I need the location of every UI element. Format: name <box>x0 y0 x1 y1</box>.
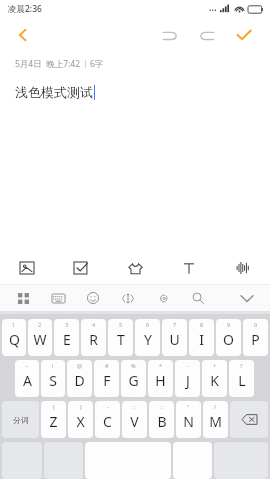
staticText: U <box>169 330 180 349</box>
staticText: D <box>74 371 85 390</box>
button[interactable]: - <box>175 360 200 397</box>
button[interactable]: ) <box>68 401 93 438</box>
staticText: W <box>33 330 47 349</box>
staticText: I <box>199 330 204 349</box>
button[interactable]: Done <box>230 21 258 49</box>
button[interactable]: - <box>95 401 120 438</box>
button[interactable]: Search <box>185 285 211 311</box>
button[interactable]: ? <box>229 360 254 397</box>
button[interactable]: Audio <box>216 252 270 284</box>
button[interactable]: Redo <box>193 21 221 49</box>
staticText: O <box>223 330 234 349</box>
staticText: 6字 <box>90 58 104 70</box>
button[interactable]: Period <box>173 442 212 479</box>
staticText: P <box>251 330 260 349</box>
button[interactable]: % <box>121 360 146 397</box>
button[interactable]: ; <box>149 401 174 438</box>
button[interactable]: Style <box>108 252 162 284</box>
button[interactable]: Image <box>0 252 54 284</box>
button[interactable]: 3 <box>54 319 79 356</box>
staticText: Q <box>9 330 20 349</box>
staticText: 5月4日 晚上7:42 <box>15 58 81 70</box>
button[interactable]: Back <box>10 22 36 48</box>
staticText: 分词 <box>13 415 29 425</box>
staticText: A <box>23 371 32 390</box>
button[interactable]: 1 <box>2 319 26 356</box>
staticText: R <box>89 330 98 349</box>
button[interactable]: ! <box>41 360 65 397</box>
staticText: 1 <box>12 321 16 328</box>
button[interactable]: Undo <box>156 21 184 49</box>
button[interactable]: 分词 <box>2 401 39 438</box>
staticText: E <box>63 330 71 349</box>
button[interactable]: 0 <box>243 319 268 356</box>
button[interactable]: Attach <box>150 285 176 311</box>
staticText: - <box>107 403 109 410</box>
button[interactable]: 9 <box>216 319 241 356</box>
button[interactable]: @ <box>67 360 92 397</box>
staticText: N <box>183 412 194 431</box>
button[interactable]: 6 <box>135 319 160 356</box>
button[interactable]: Keyboard layout <box>45 285 71 311</box>
staticText: " <box>187 403 190 410</box>
staticText: G <box>128 371 139 390</box>
staticText: ~ <box>25 362 29 369</box>
staticText: L <box>238 371 246 390</box>
staticText: @ <box>77 362 82 369</box>
staticText: S <box>49 371 57 390</box>
staticText: Y <box>144 330 152 349</box>
staticText: K <box>210 371 219 390</box>
staticText: J <box>186 371 190 390</box>
button[interactable]: Grid <box>10 285 36 311</box>
staticText: + <box>213 362 217 369</box>
button[interactable]: / <box>203 401 228 438</box>
staticText: * <box>159 362 163 369</box>
staticText: # <box>105 362 109 369</box>
button[interactable]: Emoji <box>80 285 106 311</box>
button[interactable]: * <box>148 360 173 397</box>
staticText: ? <box>240 362 243 369</box>
staticText: 7 <box>173 321 177 328</box>
button[interactable]: 7 <box>162 319 187 356</box>
staticText: 8 <box>200 321 204 328</box>
staticText: 5 <box>119 321 123 328</box>
button[interactable]: 4 <box>81 319 106 356</box>
button[interactable]: + <box>202 360 227 397</box>
staticText: V <box>130 412 139 431</box>
button[interactable]: Checklist <box>54 252 108 284</box>
staticText: Z <box>49 412 58 431</box>
button[interactable]: Clipboard <box>115 285 141 311</box>
button[interactable]: Hide keyboard <box>234 285 260 311</box>
staticText: / <box>214 403 217 410</box>
staticText: - <box>187 362 189 369</box>
button[interactable]: 8 <box>189 319 214 356</box>
staticText: ) <box>80 403 82 410</box>
button[interactable]: " <box>176 401 201 438</box>
button[interactable]: 2 <box>28 319 52 356</box>
button[interactable]: ( <box>41 401 66 438</box>
staticText: 浅色模式测试 <box>15 84 93 100</box>
staticText: 4 <box>92 321 96 328</box>
staticText: 3 <box>65 321 69 328</box>
button[interactable]: Text format <box>162 252 216 284</box>
staticText: C <box>103 412 112 431</box>
button[interactable]: # <box>94 360 119 397</box>
staticText: 0 <box>254 321 258 328</box>
staticText: 9 <box>227 321 231 328</box>
button[interactable]: 5 <box>108 319 133 356</box>
staticText: % <box>131 362 136 369</box>
button[interactable]: ~ <box>15 360 39 397</box>
staticText: ; <box>161 403 163 410</box>
staticText: ( <box>53 403 55 410</box>
button[interactable]: Backspace <box>230 401 268 438</box>
staticText: 6 <box>146 321 150 328</box>
staticText: X <box>76 412 85 431</box>
staticText: 2 <box>38 321 42 328</box>
staticText: T <box>117 330 125 349</box>
button[interactable]: : <box>122 401 147 438</box>
staticText: ! <box>52 362 54 369</box>
